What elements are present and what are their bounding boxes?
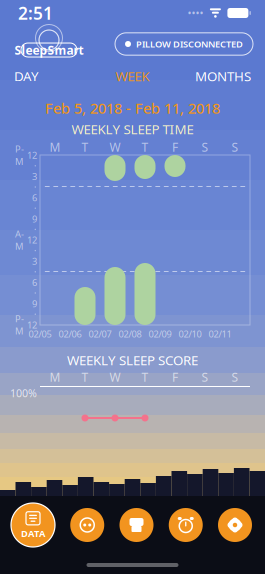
staticText: 3: [32, 255, 37, 267]
staticText: F: [172, 139, 178, 155]
staticText: F: [172, 369, 178, 385]
staticText: Feb 5, 2018 - Feb 11, 2018: [45, 98, 220, 118]
staticText: 12: [27, 234, 37, 246]
staticText: AM: [15, 228, 24, 252]
staticText: S: [231, 369, 238, 385]
staticText: 2:51: [18, 1, 53, 24]
staticText: PM: [15, 143, 24, 168]
staticText: 02/10: [178, 328, 201, 340]
staticText: T: [81, 139, 88, 155]
staticText: T: [141, 369, 148, 385]
staticText: ••••: [187, 6, 203, 20]
staticText: 3: [32, 170, 37, 183]
staticText: W: [109, 369, 120, 385]
staticText: S: [201, 369, 208, 385]
staticText: 02/05: [28, 328, 51, 340]
button[interactable]: Mood: [67, 503, 107, 547]
staticText: 9: [32, 213, 37, 225]
button[interactable]: MONTHS: [181, 63, 251, 89]
staticText: DATA: [21, 527, 45, 540]
staticText: 6: [32, 191, 37, 204]
staticText: 12: [27, 149, 37, 161]
button[interactable]: Alarm: [166, 503, 206, 547]
button[interactable]: Settings: [215, 503, 255, 547]
staticText: DAY: [14, 67, 39, 85]
staticText: SleepSmart: [14, 42, 83, 58]
staticText: PILLOW DISCONNECTED: [136, 38, 243, 50]
staticText: 02/07: [88, 328, 111, 340]
staticText: 02/11: [208, 328, 231, 340]
staticText: S: [231, 139, 238, 155]
staticText: S: [201, 139, 208, 155]
button[interactable]: PILLOW DISCONNECTED: [115, 33, 253, 55]
staticText: 02/06: [58, 328, 81, 340]
staticText: 9: [32, 297, 37, 310]
button[interactable]: Home: [116, 503, 156, 547]
staticText: M: [49, 139, 60, 155]
staticText: T: [81, 369, 88, 385]
staticText: WEEK: [115, 67, 149, 85]
staticText: W: [109, 139, 120, 155]
staticText: 100%: [10, 386, 37, 400]
staticText: M: [49, 369, 60, 385]
staticText: WEEKLY SLEEP TIME: [71, 120, 193, 138]
staticText: 02/08: [118, 328, 141, 340]
button[interactable]: WEEK: [97, 63, 167, 89]
staticText: 12: [27, 319, 37, 331]
button[interactable]: DAY: [14, 63, 84, 89]
staticText: PM: [15, 312, 24, 337]
button[interactable]: DATA: [8, 500, 58, 550]
staticText: WEEKLY SLEEP SCORE: [67, 351, 198, 369]
staticText: MONTHS: [195, 67, 251, 85]
staticText: T: [141, 139, 148, 155]
staticText: 6: [32, 276, 37, 289]
staticText: 02/09: [148, 328, 171, 340]
